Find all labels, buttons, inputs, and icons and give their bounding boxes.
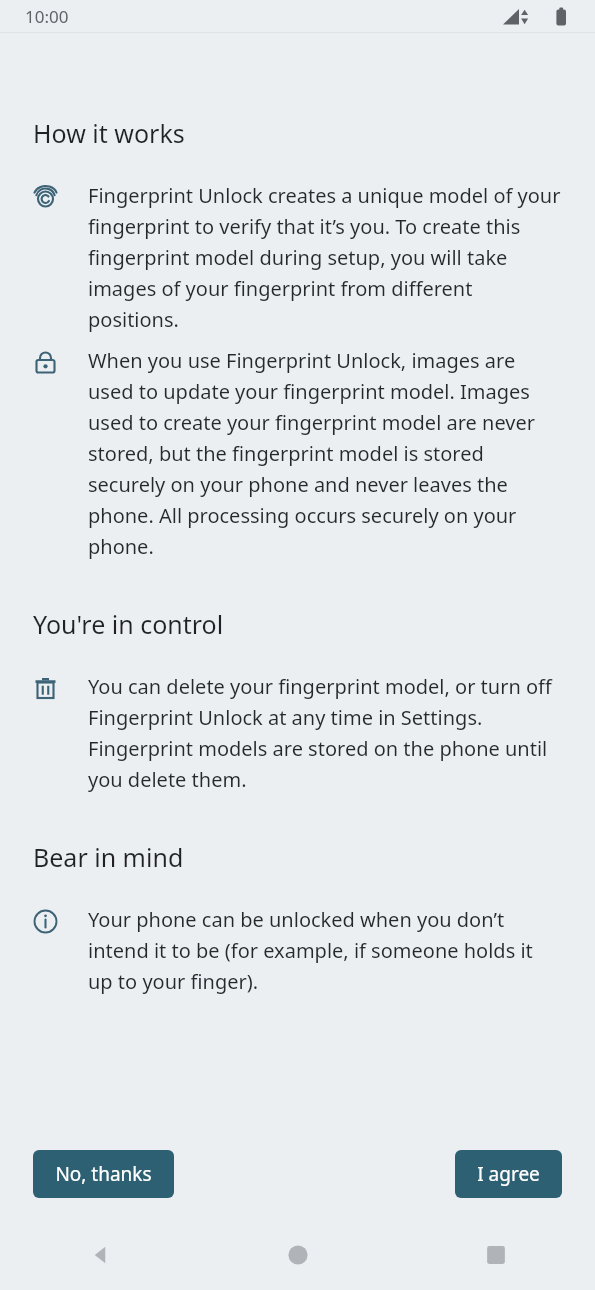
button[interactable]: Recent apps — [397, 1220, 595, 1290]
staticText: You're in control — [33, 607, 224, 641]
button[interactable]: Back — [0, 1220, 199, 1290]
button[interactable]: I agree — [455, 1150, 562, 1198]
staticText: No, thanks — [55, 1161, 152, 1187]
staticText: When you use Fingerprint Unlock, images … — [88, 347, 562, 560]
other: Information — [33, 909, 58, 934]
staticText: Your phone can be unlocked when you don’… — [88, 906, 562, 995]
button[interactable]: Home — [199, 1220, 397, 1290]
staticText: 10:00 — [25, 5, 69, 28]
staticText: I agree — [477, 1161, 540, 1187]
staticText: You can delete your fingerprint model, o… — [88, 673, 562, 793]
staticText: Fingerprint Unlock creates a unique mode… — [88, 182, 562, 333]
other: Fingerprint — [33, 185, 58, 210]
staticText: Bear in mind — [33, 840, 184, 874]
button[interactable]: No, thanks — [33, 1150, 174, 1198]
staticText: How it works — [33, 116, 185, 150]
other: Lock — [33, 350, 58, 375]
other: Delete — [33, 676, 58, 701]
